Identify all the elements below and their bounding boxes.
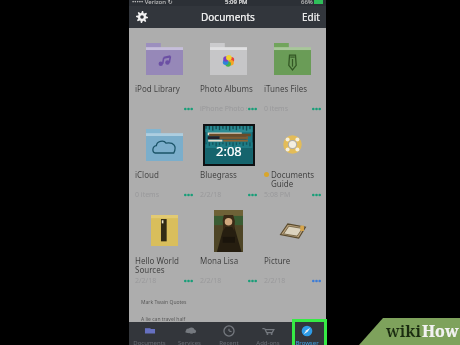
staticText: Hello World Sources	[135, 255, 193, 276]
staticText: 0 items	[135, 190, 183, 200]
staticText: 2:08	[216, 142, 242, 160]
staticText: 2/2/18	[200, 190, 247, 200]
button[interactable]: Documents	[129, 322, 169, 345]
button[interactable]: iTunes Files	[260, 37, 324, 114]
staticText: 5:09 PM	[225, 0, 248, 4]
staticText: Picture	[264, 255, 291, 266]
button[interactable]: Settings	[133, 8, 151, 26]
staticText: Documents	[201, 10, 255, 24]
button[interactable]: Documents Guide	[260, 123, 324, 200]
staticText: wiki	[386, 320, 422, 342]
button[interactable]: 2:08	[196, 123, 260, 200]
staticText: Add-ons	[256, 339, 280, 345]
staticText: Browser	[295, 339, 319, 345]
button[interactable]: Photo Albums	[196, 37, 260, 114]
staticText: Mark Twain Quotes	[141, 299, 187, 306]
staticText: Bluegrass	[200, 169, 237, 180]
staticText: iPod Library	[135, 83, 180, 94]
staticText: 2/2/18	[200, 276, 247, 286]
staticText: Documents	[133, 339, 166, 345]
button[interactable]: Picture	[260, 209, 324, 286]
button[interactable]: iCloud	[131, 123, 196, 200]
staticText: iTunes Files	[264, 83, 308, 94]
button[interactable]: Edit	[296, 6, 326, 28]
staticText: How	[422, 320, 459, 342]
button[interactable]: iPod Library	[131, 37, 196, 114]
button[interactable]: Browser	[287, 322, 326, 345]
staticText: 66%	[301, 0, 313, 4]
staticText: 2/2/18	[264, 276, 311, 286]
staticText: Recent	[219, 339, 239, 345]
staticText: A lie can travel half	[141, 316, 186, 323]
button[interactable]: Services	[169, 322, 209, 345]
staticText: iCloud	[135, 169, 159, 180]
staticText: 2/2/18	[135, 276, 183, 286]
staticText: Photo Albums	[200, 83, 253, 94]
staticText: Documents Guide	[271, 169, 321, 190]
other: Browser tab highlight	[292, 319, 327, 345]
staticText: 5:08 PM	[264, 190, 311, 200]
staticText: 0 items	[264, 104, 311, 114]
staticText: Services	[178, 339, 201, 345]
button[interactable]: Mona Lisa	[196, 209, 260, 286]
staticText: Edit	[302, 10, 320, 24]
staticText: ••••• Verizon ↻	[132, 0, 173, 4]
staticText: iPhone Photo s…	[200, 104, 247, 114]
button[interactable]: Hello World Sources	[131, 209, 196, 286]
staticText: Mona Lisa	[200, 255, 239, 266]
button[interactable]: Recent	[209, 322, 248, 345]
button[interactable]: Add-ons	[248, 322, 287, 345]
